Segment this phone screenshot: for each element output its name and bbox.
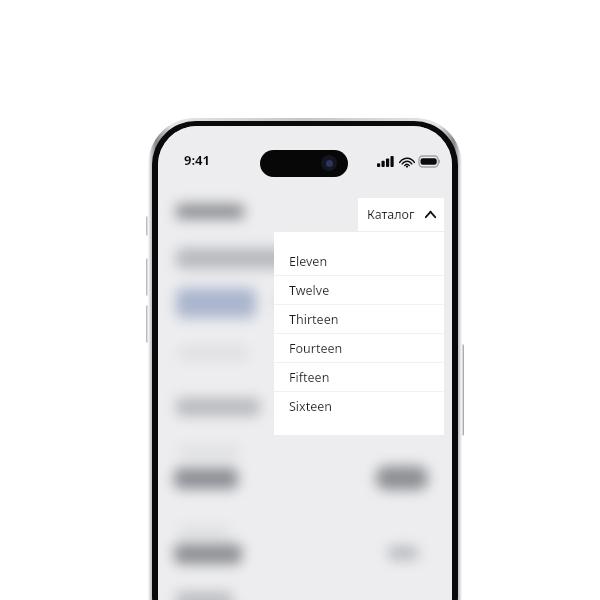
button[interactable]: Sixteen	[274, 392, 444, 420]
staticText: 9:41	[184, 151, 210, 169]
button[interactable]: Twelve	[274, 276, 444, 304]
staticText: Twelve	[289, 282, 330, 299]
staticText: Sixteen	[289, 398, 333, 415]
staticText: Eleven	[289, 253, 328, 270]
staticText: Fifteen	[289, 369, 330, 386]
button[interactable]: Fifteen	[274, 363, 444, 391]
staticText: Fourteen	[289, 340, 343, 357]
other: Collapse catalog	[425, 211, 436, 218]
button[interactable]: Eleven	[274, 247, 444, 275]
button[interactable]: Каталог	[358, 198, 444, 231]
button[interactable]: Thirteen	[274, 305, 444, 333]
staticText: Каталог	[367, 206, 415, 223]
staticText: Thirteen	[289, 311, 339, 328]
button[interactable]: Fourteen	[274, 334, 444, 362]
